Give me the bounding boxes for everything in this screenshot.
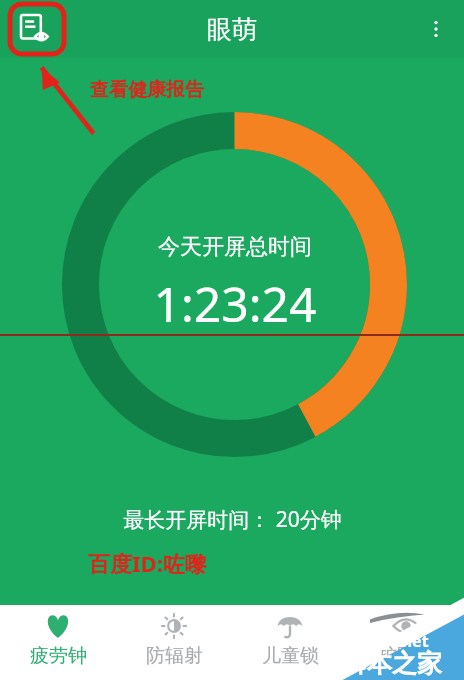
- staticText: jb51.net: [364, 630, 429, 652]
- button[interactable]: 查看健康报告: [14, 8, 58, 52]
- staticText: 防辐射: [146, 644, 203, 668]
- staticText: 百度ID:咗嚟: [88, 548, 207, 578]
- staticText: 眼萌: [207, 14, 257, 45]
- staticText: 最长开屏时间： 20分钟: [123, 505, 342, 534]
- button[interactable]: 疲劳钟: [0, 605, 116, 680]
- button[interactable]: 儿童锁: [232, 605, 348, 680]
- staticText: 护眼色: [378, 644, 435, 668]
- staticText: 1:23:24: [153, 271, 317, 336]
- button[interactable]: 防辐射: [116, 605, 232, 680]
- staticText: 今天开屏总时间: [158, 233, 312, 261]
- staticText: 疲劳钟: [30, 644, 87, 668]
- staticText: 脚本之家: [342, 648, 442, 679]
- button[interactable]: 护眼色: [348, 605, 464, 680]
- button[interactable]: 更多选项: [416, 9, 456, 49]
- staticText: 儿童锁: [262, 644, 319, 668]
- staticText: 查看健康报告: [90, 78, 204, 102]
